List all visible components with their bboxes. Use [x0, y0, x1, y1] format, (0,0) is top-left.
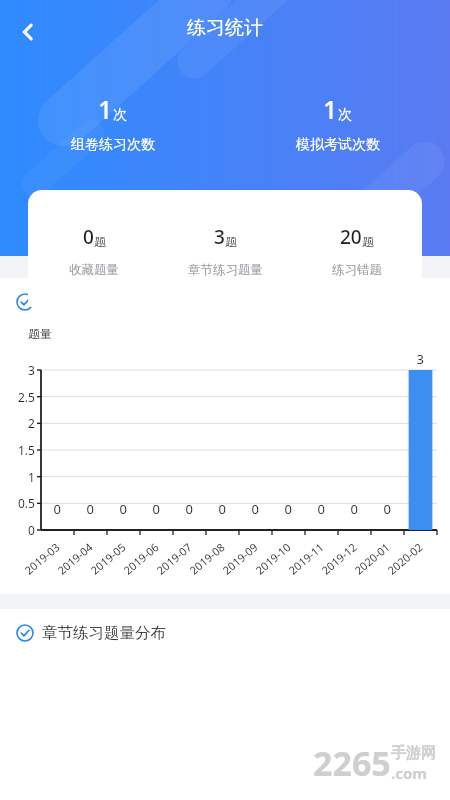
- staticText: 手游网: [391, 744, 436, 763]
- staticText: 章节练习题量: [188, 262, 263, 278]
- button[interactable]: Back: [8, 12, 48, 52]
- staticText: 次: [338, 106, 352, 124]
- button[interactable]: 1: [0, 92, 225, 154]
- staticText: 次: [113, 106, 127, 124]
- staticText: 2265: [313, 740, 391, 786]
- staticText: 0: [83, 224, 94, 250]
- staticText: 题: [362, 234, 374, 249]
- button[interactable]: 3: [160, 190, 291, 278]
- staticText: 题: [94, 234, 106, 249]
- staticText: 1: [323, 92, 338, 126]
- button[interactable]: 0: [28, 190, 160, 278]
- staticText: 1: [98, 92, 113, 126]
- staticText: 收藏题量: [69, 262, 119, 278]
- staticText: 章节练习题量分布: [42, 623, 166, 643]
- staticText: 20: [340, 224, 362, 250]
- staticText: 练习统计: [187, 16, 263, 40]
- button[interactable]: 20: [291, 190, 422, 278]
- staticText: 题: [225, 234, 237, 249]
- staticText: .com: [391, 763, 427, 783]
- button[interactable]: 章节练习题量分布: [0, 609, 450, 643]
- staticText: 3: [214, 224, 225, 250]
- staticText: 组卷练习次数: [71, 136, 155, 154]
- button[interactable]: 章节练习活跃度: [0, 278, 450, 312]
- staticText: 练习错题: [332, 262, 382, 278]
- staticText: 模拟考试次数: [296, 136, 380, 154]
- button[interactable]: 1: [225, 92, 450, 154]
